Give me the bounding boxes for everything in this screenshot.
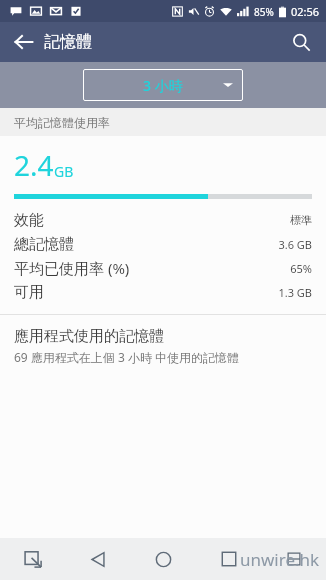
button[interactable]: Home	[131, 538, 196, 580]
button[interactable]: Screenshot	[0, 538, 66, 580]
staticText: 85%	[254, 5, 274, 19]
staticText: 3 小時	[143, 76, 183, 95]
button[interactable]: Recents	[196, 538, 261, 580]
staticText: 平均已使用率 (%)	[14, 258, 130, 278]
staticText: 1.3 GB	[278, 285, 312, 300]
staticText: 記憶體	[44, 32, 92, 52]
staticText: unwire.hk	[240, 548, 320, 571]
staticText: 69 應用程式在上個 3 小時 中使用的記憶體	[14, 349, 240, 365]
button[interactable]: 平均已使用率 (%)	[14, 256, 312, 280]
staticText: 平均記憶體使用率	[14, 115, 110, 130]
button[interactable]: 總記憶體	[14, 232, 312, 256]
staticText: 總記憶體	[14, 235, 74, 254]
button[interactable]: Search	[284, 25, 318, 59]
button[interactable]: Back	[8, 26, 40, 58]
button[interactable]: 效能	[14, 208, 312, 232]
staticText: GB	[54, 162, 74, 181]
button[interactable]: 可用	[14, 280, 312, 304]
staticText: 效能	[14, 211, 44, 230]
staticText: 3.6 GB	[278, 237, 312, 252]
staticText: 02:56	[291, 4, 320, 19]
staticText: 2.4	[14, 146, 54, 184]
button[interactable]: 應用程式使用的記憶體	[0, 315, 326, 375]
staticText: 65%	[290, 261, 312, 276]
staticText: 應用程式使用的記憶體	[14, 327, 164, 346]
button[interactable]: Split screen	[261, 538, 326, 580]
staticText: 標準	[290, 213, 312, 227]
staticText: 可用	[14, 283, 44, 302]
button[interactable]: 3 小時	[83, 69, 243, 101]
button[interactable]: Back	[66, 538, 131, 580]
